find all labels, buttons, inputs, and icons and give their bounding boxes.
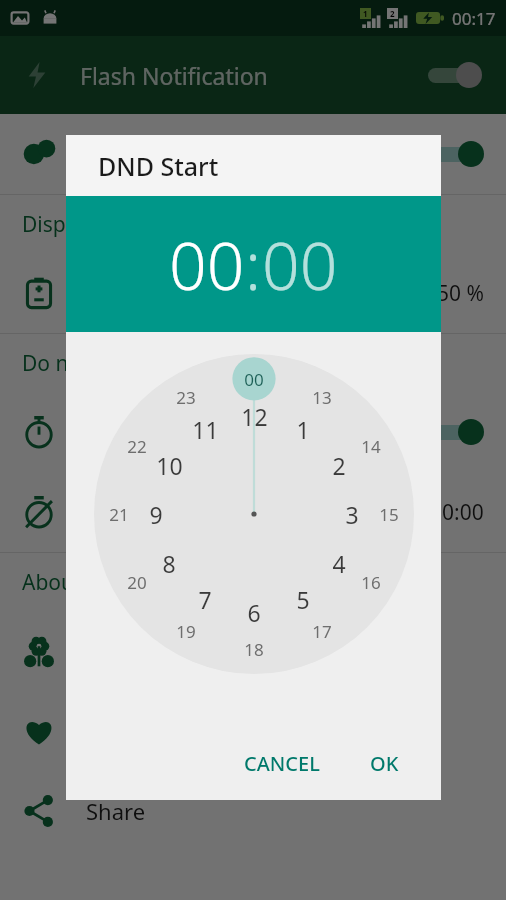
- staticText: DND Start: [86, 417, 190, 447]
- staticText: 7: [198, 584, 212, 615]
- staticText: Flash Notification: [80, 60, 268, 91]
- staticText: 19: [176, 620, 196, 643]
- button[interactable]: Share: [0, 771, 506, 851]
- staticText: 16: [361, 571, 381, 594]
- button[interactable]: DND End: [0, 472, 506, 552]
- staticText: DND Start: [98, 149, 219, 183]
- button[interactable]: OK: [356, 740, 413, 787]
- staticText: 4: [332, 548, 346, 579]
- staticText: 00: [169, 219, 245, 309]
- staticText: 3: [345, 499, 359, 530]
- staticText: 12: [241, 401, 268, 432]
- staticText: 23: [176, 386, 196, 409]
- staticText: Other apps: [86, 636, 202, 666]
- staticText: 1: [296, 414, 310, 445]
- staticText: Display: [22, 210, 94, 239]
- staticText: 6: [247, 597, 261, 628]
- staticText: 9: [149, 499, 163, 530]
- staticText: 2: [390, 8, 395, 19]
- staticText: 22: [127, 435, 147, 458]
- staticText: 00: [262, 219, 338, 309]
- button[interactable]: Notification Apps: [0, 114, 506, 194]
- staticText: 0:00: [388, 418, 430, 447]
- button[interactable]: Rate: [0, 691, 506, 771]
- staticText: Battery saving: [86, 278, 234, 308]
- button[interactable]: DND Start: [0, 392, 506, 472]
- staticText: 18: [244, 638, 264, 661]
- staticText: 17: [312, 620, 332, 643]
- staticText: 14: [361, 435, 381, 458]
- staticText: CANCEL: [244, 750, 320, 777]
- staticText: Notification Apps: [86, 139, 264, 169]
- staticText: 21: [109, 503, 129, 526]
- staticText: 00: [244, 368, 264, 391]
- button[interactable]: Other apps: [0, 611, 506, 691]
- staticText: 50 %: [437, 279, 484, 308]
- staticText: DND End: [86, 497, 180, 527]
- staticText: Do not disturb: [22, 349, 165, 378]
- button[interactable]: Clock face hour picker: [94, 354, 414, 674]
- staticText: 2: [332, 450, 346, 481]
- button[interactable]: CANCEL: [230, 740, 334, 787]
- button[interactable]: Toggle DND Start: [430, 417, 484, 447]
- staticText: 0:00: [442, 498, 484, 527]
- button[interactable]: Toggle flash notification: [428, 60, 482, 90]
- button[interactable]: Toggle Notification Apps: [430, 139, 484, 169]
- staticText: 5: [296, 584, 310, 615]
- staticText: Share: [86, 796, 146, 826]
- staticText: 20: [127, 571, 147, 594]
- staticText: 15: [379, 503, 399, 526]
- staticText: 00:17: [452, 7, 496, 30]
- staticText: 8: [162, 548, 176, 579]
- staticText: 13: [312, 386, 332, 409]
- staticText: 11: [192, 414, 219, 445]
- staticText: 10: [156, 450, 183, 481]
- button[interactable]: Battery saving: [0, 253, 506, 333]
- staticText: :: [245, 219, 262, 309]
- staticText: 1: [363, 8, 368, 19]
- staticText: OK: [370, 750, 399, 777]
- staticText: About: [22, 568, 82, 597]
